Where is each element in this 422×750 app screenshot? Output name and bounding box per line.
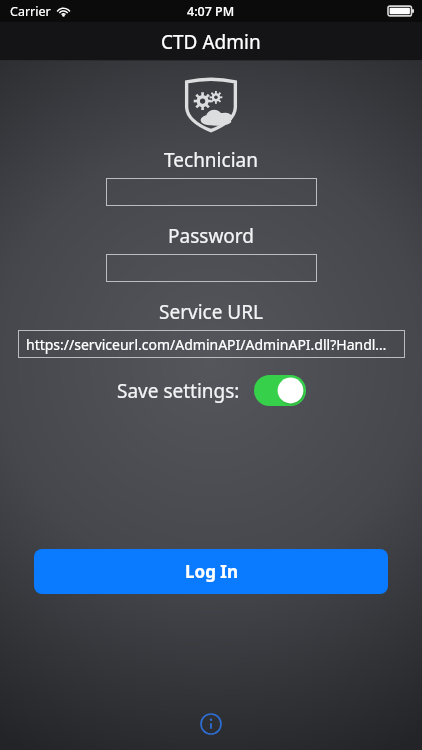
staticText: Save settings: [117,378,240,404]
staticText: Password [168,223,254,249]
staticText: Service URL [159,299,263,325]
button[interactable] [106,178,317,206]
button[interactable]: Log In [34,549,388,594]
button[interactable]: Information [191,704,231,744]
staticText: Log In [185,560,238,583]
staticText: CTD Admin [161,29,261,55]
staticText: Technician [164,147,258,173]
button[interactable]: Save settings: [111,373,312,408]
staticText: 4:07 PM [187,3,235,20]
button[interactable] [106,254,317,282]
staticText: Carrier [10,3,51,20]
button[interactable]: https://serviceurl.com/AdminAPI/AdminAPI… [18,330,405,358]
button[interactable]: Save settings toggle [254,375,306,406]
staticText: https://serviceurl.com/AdminAPI/AdminAPI… [26,335,387,354]
